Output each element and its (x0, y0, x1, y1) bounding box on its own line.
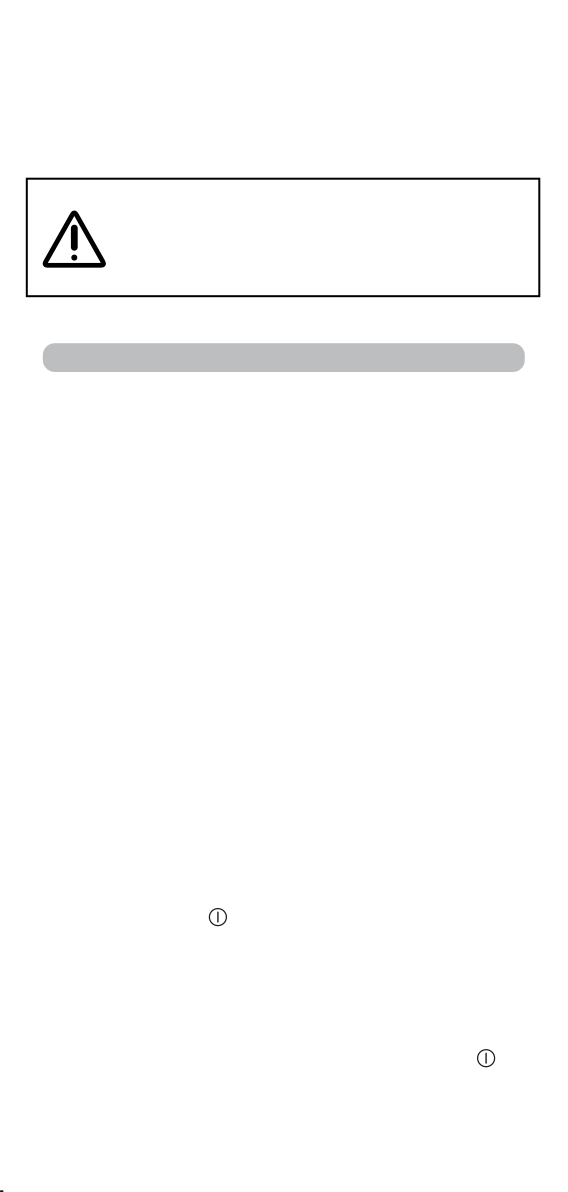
button[interactable]: Caution (27, 179, 539, 296)
button[interactable]: Placeholder bar (43, 343, 525, 372)
